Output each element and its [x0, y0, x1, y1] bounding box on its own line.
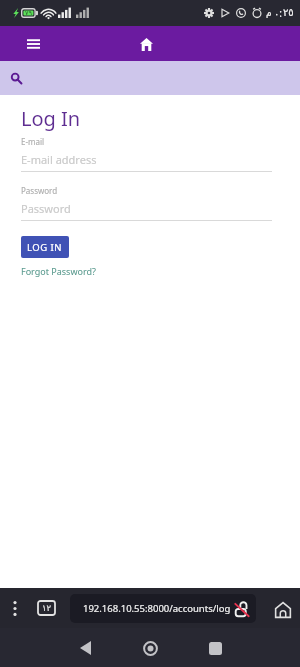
button[interactable]: Home [132, 30, 160, 58]
button[interactable]: Back [69, 635, 101, 661]
staticText: ١٢ [42, 603, 52, 613]
button[interactable]: Menu [22, 33, 44, 55]
staticText: LOG IN [27, 241, 63, 254]
button[interactable]: Tabs [38, 601, 55, 615]
staticText: Log In [21, 105, 81, 132]
button[interactable]: LOG IN [21, 236, 69, 258]
staticText: 192.168.10.55:8000/accounts/log [83, 602, 231, 615]
staticText: Password [21, 185, 58, 196]
button[interactable]: Home [134, 635, 166, 661]
staticText: Password [21, 201, 71, 216]
button[interactable]: Forgot Password? [21, 265, 96, 277]
button[interactable]: Search [6, 68, 26, 88]
staticText: ٧٩ [25, 9, 32, 17]
staticText: E-mail [21, 136, 45, 147]
staticText: ٢٥ [283, 7, 294, 19]
staticText: ٠: [274, 6, 283, 20]
button[interactable]: More options [5, 599, 24, 618]
staticText: Forgot Password? [21, 265, 96, 277]
staticText: E-mail address [21, 152, 97, 167]
button[interactable]: 192.168.10.55:8000/accounts/log [70, 594, 256, 623]
staticText: م [266, 8, 272, 18]
button[interactable]: Home [271, 598, 295, 622]
button[interactable]: Recent apps [199, 635, 231, 661]
